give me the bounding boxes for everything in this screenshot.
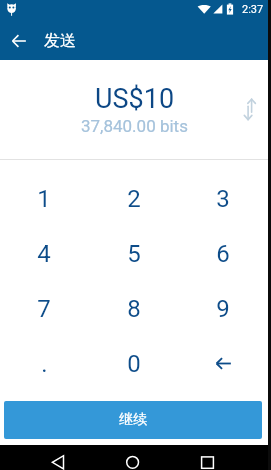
staticText: US$10 <box>95 83 175 115</box>
staticText: 2 <box>127 185 141 213</box>
button[interactable]: 9 <box>178 281 267 336</box>
button[interactable]: 2 <box>89 171 178 226</box>
button[interactable]: 8 <box>89 281 178 336</box>
other: Backspace <box>210 351 236 377</box>
button[interactable]: 0 <box>89 336 178 391</box>
staticText: 0 <box>127 350 141 378</box>
button[interactable]: 7 <box>0 281 89 336</box>
button[interactable]: Backspace <box>178 336 267 391</box>
button[interactable]: Swap currency <box>238 86 262 120</box>
staticText: 6 <box>216 240 230 268</box>
button[interactable]: . <box>0 336 89 391</box>
staticText: 9 <box>216 295 230 323</box>
staticText: 4 <box>37 240 51 268</box>
button[interactable]: 5 <box>89 226 178 281</box>
button[interactable]: 6 <box>178 226 267 281</box>
button[interactable]: Recent apps <box>188 445 228 470</box>
button[interactable]: 4 <box>0 226 89 281</box>
staticText: 8 <box>127 295 141 323</box>
staticText: 1 <box>37 185 51 213</box>
button[interactable]: Home <box>113 445 153 470</box>
staticText: 2:37 <box>242 3 264 16</box>
button[interactable]: Back <box>0 22 38 60</box>
staticText: . <box>41 350 48 378</box>
staticText: 发送 <box>44 31 76 51</box>
button[interactable]: 继续 <box>4 401 262 439</box>
staticText: 3 <box>216 185 230 213</box>
button[interactable]: 3 <box>178 171 267 226</box>
button[interactable]: 1 <box>0 171 89 226</box>
button[interactable]: Back <box>38 445 78 470</box>
staticText: 37,840.00 bits <box>81 116 188 136</box>
staticText: 继续 <box>119 411 147 429</box>
staticText: 5 <box>127 240 141 268</box>
staticText: 7 <box>37 295 51 323</box>
